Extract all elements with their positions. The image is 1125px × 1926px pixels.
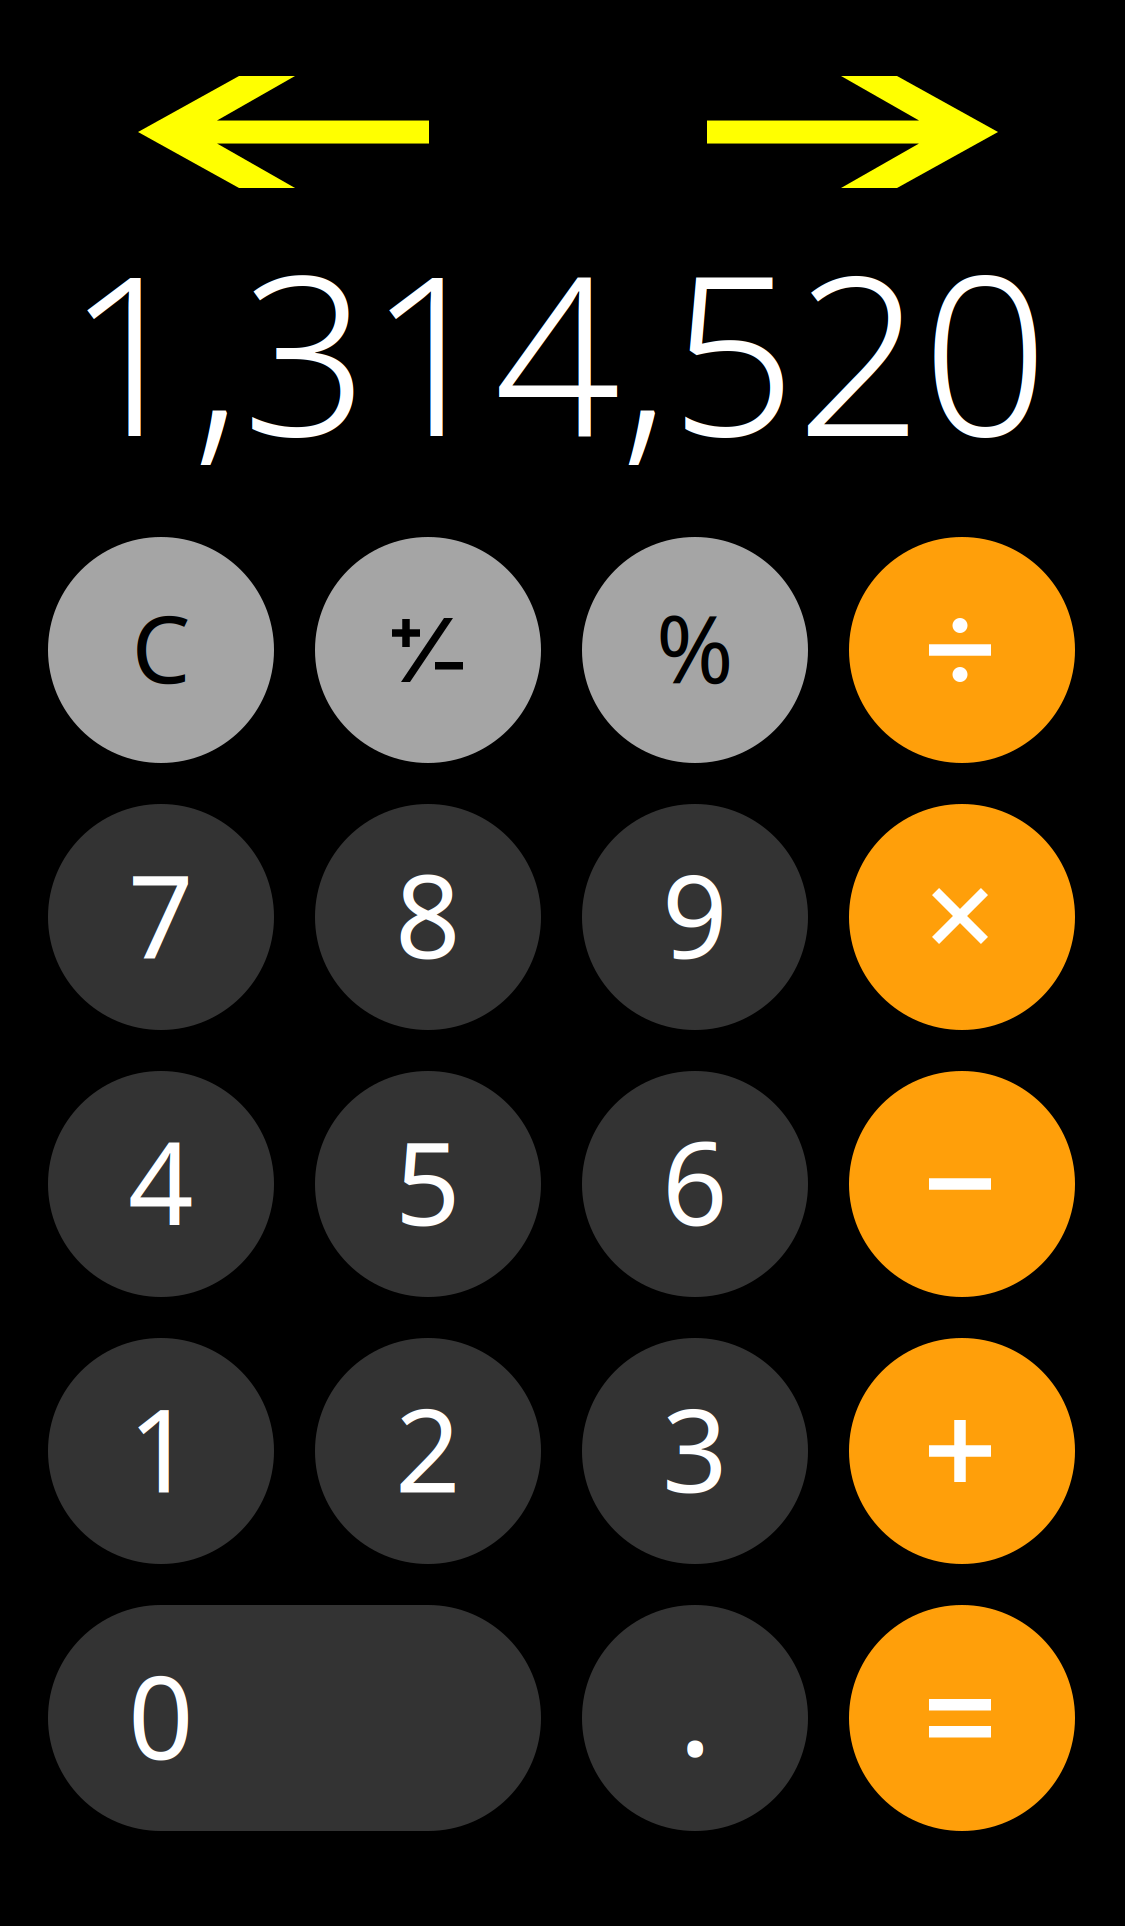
staticText: C — [131, 585, 190, 709]
button[interactable]: Previous — [138, 76, 429, 188]
button[interactable]: 8 — [315, 804, 541, 1030]
button[interactable]: 1 — [48, 1338, 274, 1564]
staticText: 6 — [662, 1105, 728, 1257]
button[interactable]: Subtract — [849, 1071, 1075, 1297]
button[interactable]: 0 — [48, 1605, 541, 1831]
button[interactable]: Next — [707, 76, 998, 188]
button[interactable]: Plus minus — [315, 537, 541, 763]
staticText: 1,314,520 — [66, 203, 1048, 497]
button[interactable]: 2 — [315, 1338, 541, 1564]
button[interactable]: 9 — [582, 804, 808, 1030]
button[interactable]: 6 — [582, 1071, 808, 1297]
staticText: % — [656, 585, 734, 709]
button[interactable]: 5 — [315, 1071, 541, 1297]
staticText: 2 — [395, 1372, 461, 1524]
staticText: 4 — [128, 1105, 194, 1257]
button[interactable]: 4 — [48, 1071, 274, 1297]
button[interactable]: Multiply — [849, 804, 1075, 1030]
button[interactable]: % — [582, 537, 808, 763]
staticText: . — [678, 1621, 712, 1791]
staticText: 9 — [662, 838, 728, 990]
staticText: 8 — [395, 838, 461, 990]
button[interactable]: 7 — [48, 804, 274, 1030]
button[interactable]: Divide — [849, 537, 1075, 763]
staticText: 5 — [395, 1105, 461, 1257]
button[interactable]: 3 — [582, 1338, 808, 1564]
button[interactable]: C — [48, 537, 274, 763]
staticText: 7 — [128, 838, 194, 990]
button[interactable]: . — [582, 1605, 808, 1831]
button[interactable]: Equals — [849, 1605, 1075, 1831]
staticText: 1 — [128, 1372, 194, 1524]
staticText: 0 — [128, 1639, 194, 1791]
button[interactable]: Add — [849, 1338, 1075, 1564]
staticText: 3 — [662, 1372, 728, 1524]
